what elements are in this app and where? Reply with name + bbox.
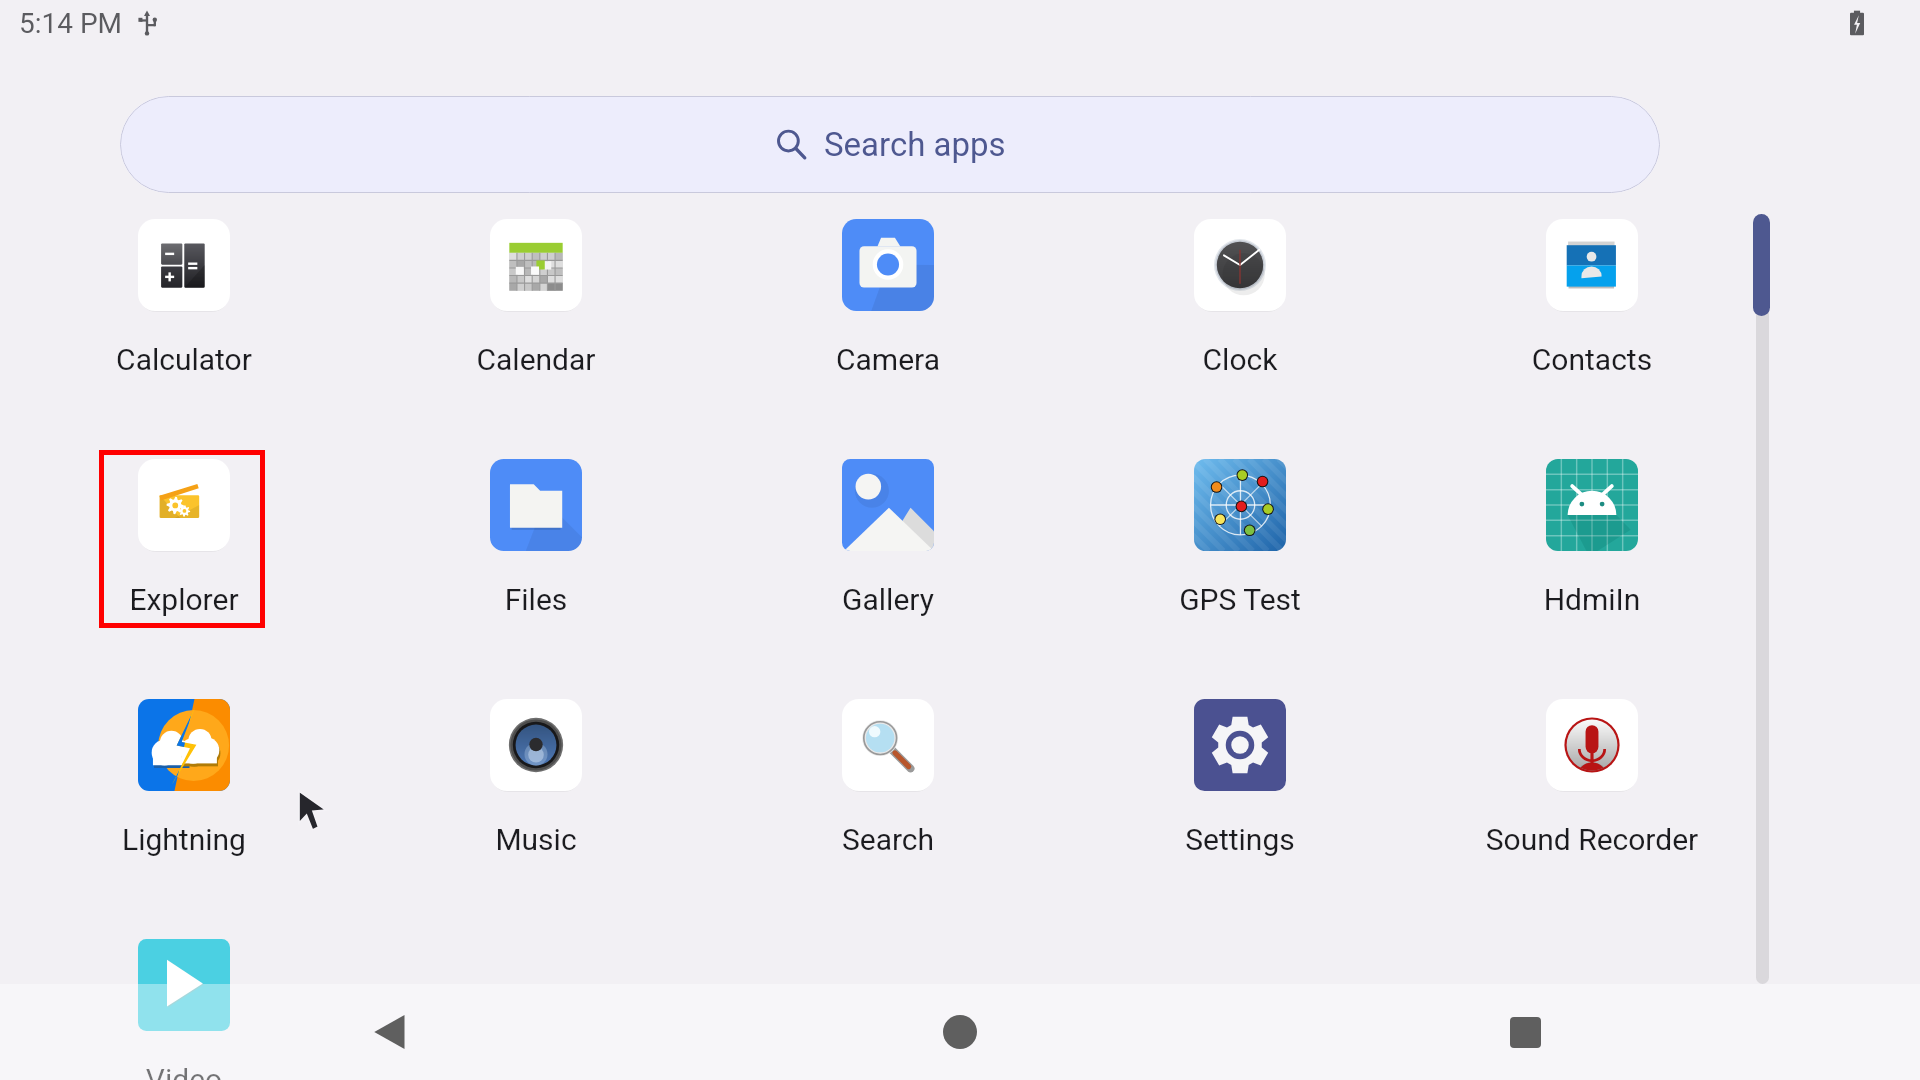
staticText: HdmiIn — [1452, 582, 1732, 617]
staticText: GPS Test — [1100, 582, 1380, 617]
staticText: Clock — [1100, 342, 1380, 377]
staticText: 5:14 PM — [19, 7, 123, 40]
staticText: Gallery — [748, 582, 1028, 617]
button[interactable]: Video — [44, 925, 324, 1080]
button[interactable]: Settings — [1100, 685, 1380, 875]
staticText: Lightning — [44, 822, 324, 857]
button[interactable]: GPS Test — [1100, 445, 1380, 635]
button[interactable]: Search — [748, 685, 1028, 875]
button[interactable]: Search apps — [120, 96, 1660, 193]
staticText: Search apps — [824, 125, 1006, 164]
button[interactable]: Back — [343, 984, 439, 1080]
staticText: Camera — [748, 342, 1028, 377]
staticText: Contacts — [1452, 342, 1732, 377]
button[interactable]: HdmiIn — [1452, 445, 1732, 635]
button[interactable]: Contacts — [1452, 205, 1732, 395]
button[interactable]: Explorer — [44, 445, 324, 635]
button[interactable]: Recent apps — [1477, 984, 1573, 1080]
staticText: Calendar — [396, 342, 676, 377]
button[interactable]: Clock — [1100, 205, 1380, 395]
staticText: Music — [396, 822, 676, 857]
staticText: Video — [44, 1062, 324, 1080]
staticText: Settings — [1100, 822, 1380, 857]
button[interactable]: Sound Recorder — [1452, 685, 1732, 875]
staticText: Sound Recorder — [1452, 822, 1732, 857]
staticText: Search — [748, 822, 1028, 857]
button[interactable]: Calculator — [44, 205, 324, 395]
button[interactable]: Camera — [748, 205, 1028, 395]
button[interactable]: Home — [912, 984, 1008, 1080]
button[interactable]: Lightning — [44, 685, 324, 875]
button[interactable]: Music — [396, 685, 676, 875]
button[interactable]: Files — [396, 445, 676, 635]
staticText: Calculator — [44, 342, 324, 377]
button[interactable]: Calendar — [396, 205, 676, 395]
staticText: Files — [396, 582, 676, 617]
staticText: Explorer — [44, 582, 324, 617]
button[interactable]: Gallery — [748, 445, 1028, 635]
